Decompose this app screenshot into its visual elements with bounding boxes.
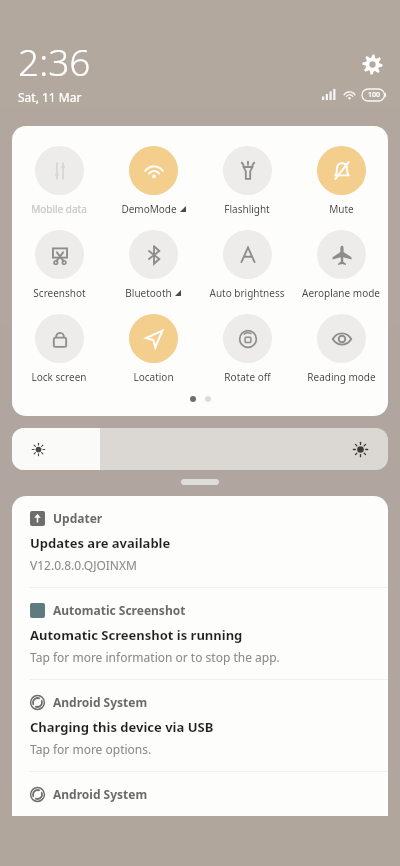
button[interactable]: Screenshot [12,230,106,300]
button[interactable]: Mute [294,146,388,216]
button[interactable]: Settings [358,50,386,78]
button[interactable]: Lock screen [12,314,106,384]
staticText: Automatic Screenshot [53,602,186,618]
staticText: Rotate off [224,370,271,384]
staticText: Updater [53,510,103,526]
staticText: Flashlight [224,202,270,216]
staticText: Bluetooth [125,286,172,300]
button[interactable]: Expand [181,479,219,485]
staticText: Screenshot [33,286,86,300]
staticText: DemoMode [121,202,177,216]
staticText: V12.0.8.0.QJOINXM [30,557,137,573]
staticText: Automatic Screenshot is running [30,626,243,644]
button[interactable]: Location [106,314,200,384]
button[interactable]: Auto brightness [200,230,294,300]
button[interactable]: Android System [12,772,388,816]
staticText: Lock screen [31,370,87,384]
button[interactable]: Mobile data [12,146,106,216]
staticText: Tap for more information or to stop the … [30,649,280,665]
staticText: Aeroplane mode [302,286,380,300]
button[interactable]: Automatic Screenshot [12,588,388,679]
staticText: Android System [53,786,148,802]
staticText: 2:36 [18,36,91,86]
staticText: Tap for more options. [30,741,152,757]
staticText: Location [133,370,174,384]
staticText: Mobile data [31,202,87,216]
staticText: Mute [329,202,354,216]
button[interactable]: Updater [12,496,388,587]
button[interactable]: Bluetooth [106,230,200,300]
staticText: Sat, 11 Mar [18,89,82,105]
button[interactable]: Rotate off [200,314,294,384]
staticText: 100 [368,90,381,100]
button[interactable]: Flashlight [200,146,294,216]
button[interactable]: Brightness [12,428,388,470]
button[interactable]: Android System [12,680,388,771]
staticText: Charging this device via USB [30,718,214,736]
button[interactable]: Reading mode [294,314,388,384]
button[interactable]: Aeroplane mode [294,230,388,300]
button[interactable]: DemoMode [106,146,200,216]
staticText: Auto brightness [209,286,285,300]
staticText: Android System [53,694,148,710]
staticText: Reading mode [307,370,376,384]
staticText: Updates are available [30,534,171,552]
